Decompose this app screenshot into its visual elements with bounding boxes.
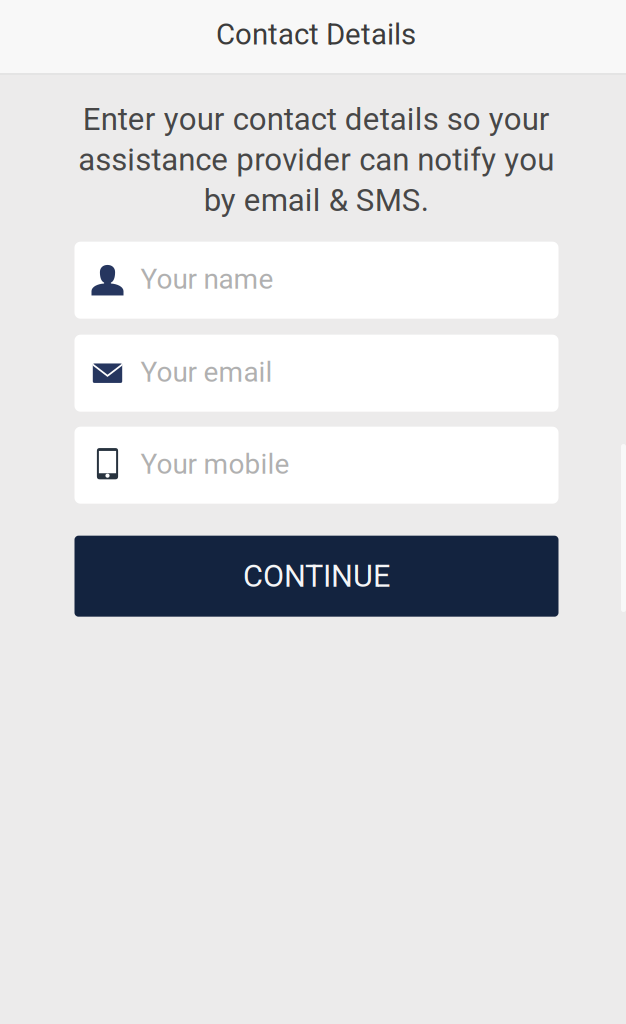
- staticText: Enter your contact details so your assis…: [78, 101, 554, 219]
- button[interactable]: CONTINUE: [74, 536, 558, 617]
- staticText: Your name: [140, 263, 273, 296]
- staticText: CONTINUE: [243, 558, 390, 594]
- button[interactable]: Your mobile: [74, 427, 558, 504]
- staticText: Contact Details: [216, 17, 416, 52]
- button[interactable]: Your name: [74, 242, 558, 319]
- staticText: Your email: [140, 356, 272, 389]
- button[interactable]: Your email: [74, 335, 558, 412]
- staticText: Your mobile: [140, 448, 289, 481]
